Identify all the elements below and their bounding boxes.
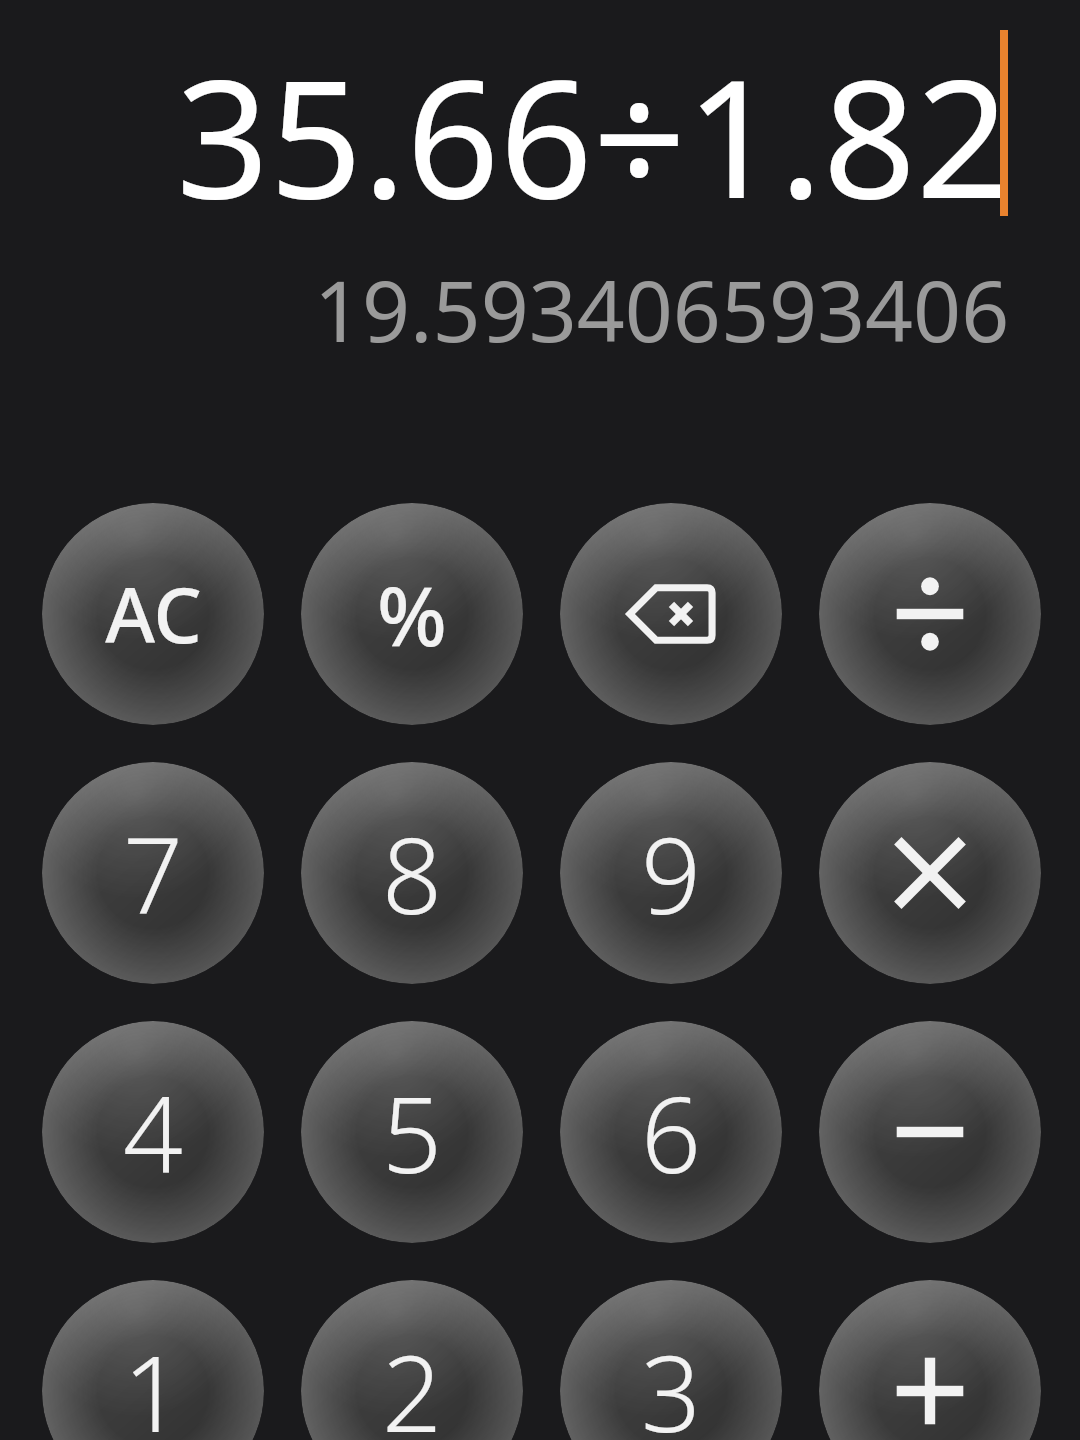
button[interactable]: 5 [301,1021,523,1243]
staticText: % [377,558,447,670]
staticText: 19.593406593406 [314,252,1010,366]
button[interactable]: 3 [560,1280,782,1440]
staticText: 4 [123,1061,183,1204]
staticText: 3 [641,1320,701,1440]
button[interactable]: 8 [301,762,523,984]
button[interactable]: 1 [42,1280,264,1440]
staticText: 8 [382,802,442,945]
staticText: 35.66÷1.82 [176,24,1010,246]
button[interactable]: 4 [42,1021,264,1243]
staticText: AC [105,562,202,666]
button[interactable]: 9 [560,762,782,984]
button[interactable]: Multiply [819,762,1041,984]
staticText: 5 [382,1061,442,1204]
staticText: 9 [641,802,701,945]
button[interactable]: Subtract [819,1021,1041,1243]
button[interactable]: Add [819,1280,1041,1440]
button[interactable]: % [301,503,523,725]
staticText: 6 [641,1061,701,1204]
button[interactable]: 2 [301,1280,523,1440]
button[interactable]: 6 [560,1021,782,1243]
button[interactable]: 7 [42,762,264,984]
staticText: 7 [123,802,183,945]
button[interactable]: Divide [819,503,1041,725]
staticText: 1 [123,1320,183,1440]
button[interactable]: AC [42,503,264,725]
staticText: 2 [382,1320,442,1440]
button[interactable]: Backspace [560,503,782,725]
